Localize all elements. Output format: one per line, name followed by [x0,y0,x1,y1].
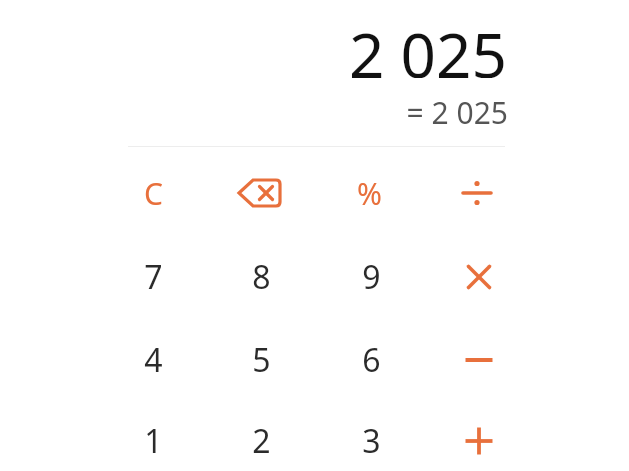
button[interactable]: Multiply [427,237,531,317]
button[interactable]: % [317,153,421,233]
button[interactable]: 1 [101,401,205,471]
button[interactable]: 5 [209,320,313,400]
button[interactable]: 9 [319,237,423,317]
staticText: 2 [252,419,271,463]
staticText: 6 [362,338,381,382]
staticText: = 2 025 [406,92,508,128]
staticText: 1 [144,419,163,463]
button[interactable]: 3 [319,401,423,471]
staticText: 3 [362,419,381,463]
staticText: 4 [144,338,163,382]
staticText: % [357,173,382,214]
button[interactable]: 4 [101,320,205,400]
staticText: 5 [252,338,271,382]
button[interactable]: Backspace [209,153,313,233]
staticText: 7 [144,255,163,299]
staticText: 2 025 [349,12,507,78]
button[interactable]: 6 [319,320,423,400]
staticText: C [144,173,163,214]
staticText: 8 [252,255,271,299]
staticText: 9 [362,255,381,299]
button[interactable]: 7 [101,237,205,317]
button[interactable]: Plus [427,401,531,471]
button[interactable]: 2 [209,401,313,471]
button[interactable]: Minus [427,320,531,400]
button[interactable]: C [101,153,205,233]
button[interactable]: Divide [425,153,529,233]
button[interactable]: 8 [209,237,313,317]
